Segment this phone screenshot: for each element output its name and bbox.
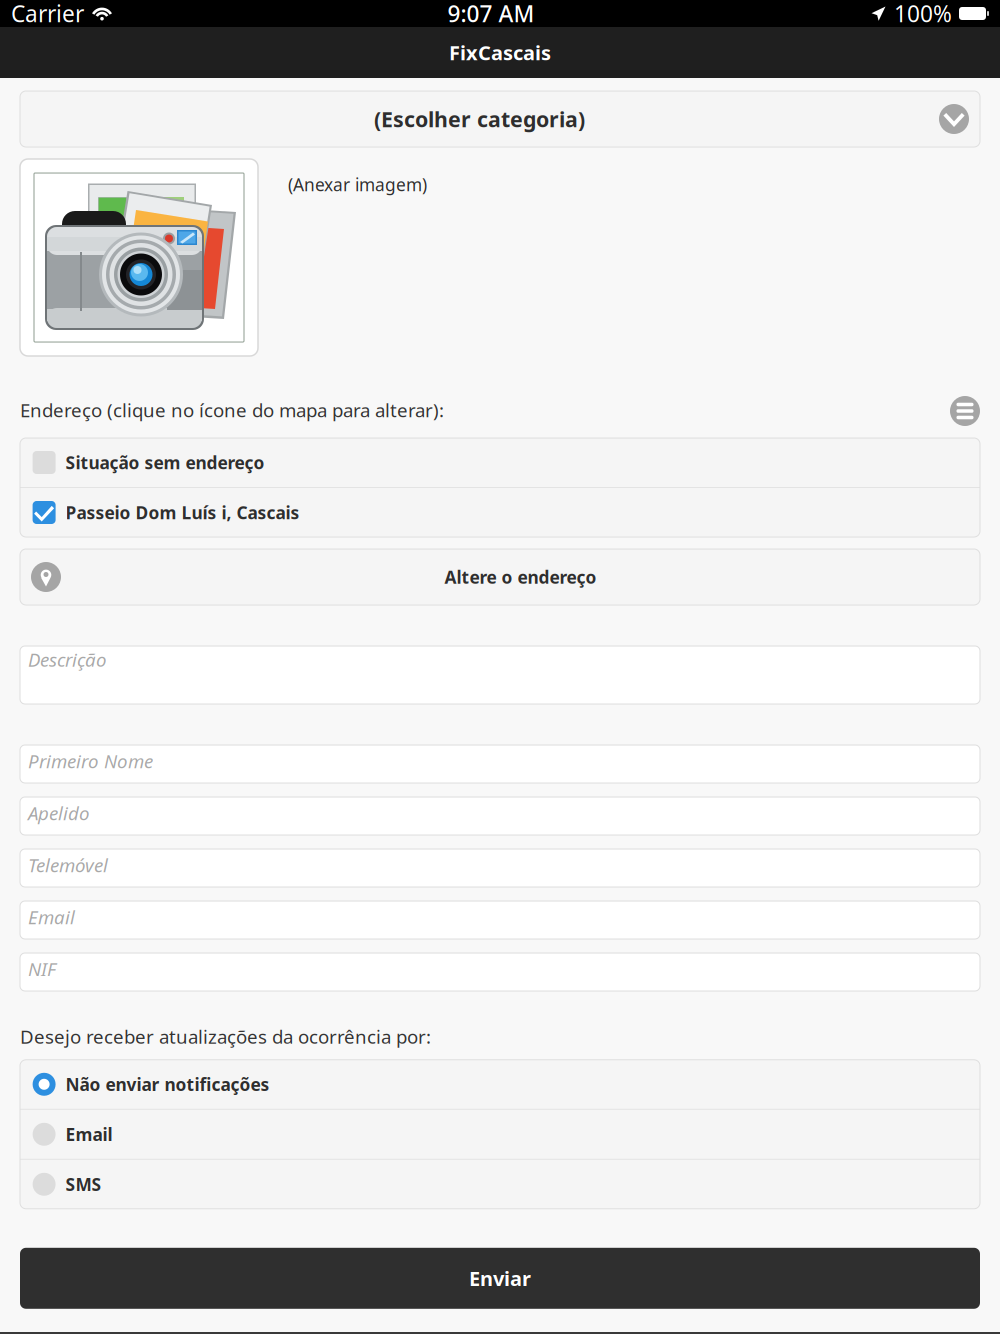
staticText: Passeio Dom Luís i, Cascais bbox=[66, 501, 300, 524]
button[interactable]: Email bbox=[20, 1110, 980, 1159]
staticText: Email bbox=[66, 1123, 113, 1146]
button[interactable]: Não enviar notificações bbox=[20, 1060, 980, 1109]
staticText: NIF bbox=[28, 957, 56, 981]
staticText: Apelido bbox=[28, 801, 90, 825]
staticText: Descrição bbox=[28, 647, 107, 672]
staticText: Altere o endereço bbox=[444, 565, 596, 588]
button[interactable]: Passeio Dom Luís i, Cascais bbox=[20, 488, 980, 537]
staticText: (Escolher categoria) bbox=[374, 105, 585, 133]
staticText: (Anexar imagem) bbox=[288, 173, 427, 196]
staticText: 9:07 AM bbox=[447, 0, 534, 28]
button[interactable]: Anexar imagem bbox=[20, 159, 258, 356]
staticText: Primeiro Nome bbox=[28, 749, 153, 773]
staticText: Não enviar notificações bbox=[66, 1073, 270, 1096]
staticText: FixCascais bbox=[449, 39, 551, 66]
staticText: 100% bbox=[894, 0, 952, 28]
button[interactable]: Altere o endereço bbox=[20, 549, 980, 605]
button[interactable]: Situação sem endereço bbox=[20, 438, 980, 487]
staticText: Carrier bbox=[11, 0, 84, 28]
staticText: SMS bbox=[66, 1173, 102, 1196]
staticText: Enviar bbox=[469, 1265, 531, 1292]
staticText: Situação sem endereço bbox=[66, 451, 265, 474]
button[interactable]: Enviar bbox=[20, 1248, 980, 1309]
staticText: Endereço (clique no ícone do mapa para a… bbox=[20, 398, 444, 422]
button[interactable]: (Escolher categoria) bbox=[20, 91, 980, 147]
staticText: Desejo receber atualizações da ocorrênci… bbox=[20, 1024, 431, 1049]
staticText: Email bbox=[28, 905, 75, 929]
button[interactable]: Mostrar lista de endereços bbox=[950, 394, 980, 426]
button[interactable]: SMS bbox=[20, 1160, 980, 1209]
staticText: Telemóvel bbox=[28, 853, 108, 877]
